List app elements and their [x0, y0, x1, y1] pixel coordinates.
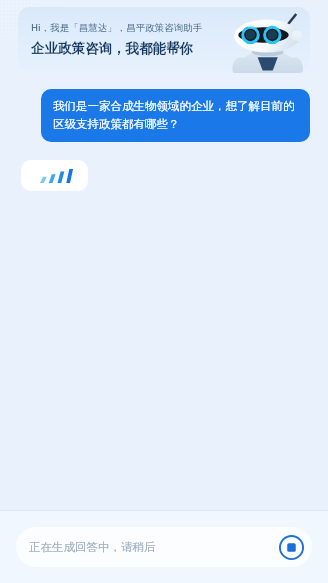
button[interactable]: 正在生成回答	[21, 160, 88, 191]
staticText: 正在生成回答中，请稍后	[29, 540, 279, 554]
staticText: Hi，我是「昌慧达」，昌平政策咨询助手	[31, 21, 203, 34]
button[interactable]: 正在生成回答中，请稍后	[16, 527, 312, 567]
button[interactable]: 停止生成	[279, 535, 304, 560]
staticText: 企业政策咨询，我都能帮你	[31, 40, 193, 57]
staticText: 我们是一家合成生物领域的企业，想了解目前的区级支持政策都有哪些？	[53, 99, 298, 132]
button[interactable]: 我们是一家合成生物领域的企业，想了解目前的区级支持政策都有哪些？	[41, 89, 310, 142]
